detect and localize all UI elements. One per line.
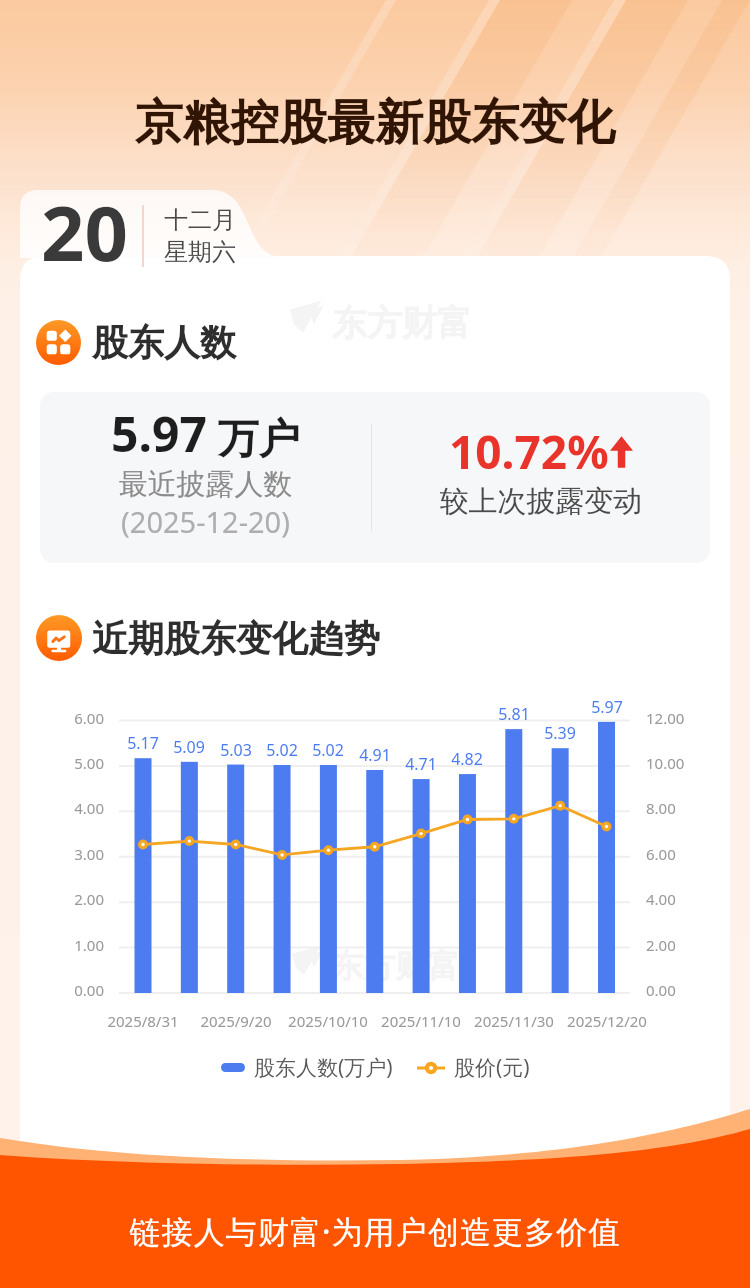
staticText: 3.00 [45,844,104,864]
staticText: 5.03 [208,739,264,761]
staticText: 5.97 [111,401,207,466]
staticText: 2025/9/20 [181,1011,291,1031]
staticText: 2.00 [646,935,716,955]
staticText: 0.00 [45,980,104,1000]
staticText: 星期六 [164,237,236,267]
staticText: 20 [41,180,128,284]
staticText: 2025/12/20 [552,1011,662,1031]
staticText: 万户 [207,409,300,465]
staticText: 5.02 [300,739,356,761]
staticText: 10.72% [449,420,609,483]
staticText: 近期股东变化趋势 [92,616,380,661]
staticText: 5.09 [161,736,217,758]
staticText: 4.00 [646,889,716,909]
staticText: 6.00 [646,844,716,864]
staticText: 5.81 [486,703,542,725]
staticText: 10.00 [646,753,716,773]
staticText: 2025/8/31 [88,1011,198,1031]
staticText: 8.00 [646,798,716,818]
button[interactable]: 股价(元) [417,1053,530,1082]
staticText: 2025/10/10 [273,1011,383,1031]
staticText: 1.00 [45,935,104,955]
other: Trend chart [36,615,82,661]
staticText: 12.00 [646,708,716,728]
staticText: 2025/11/10 [366,1011,476,1031]
staticText: 2025/11/30 [459,1011,569,1031]
staticText: 6.00 [45,708,104,728]
staticText: 5.97 [579,696,635,718]
staticText: (2025-12-20) [40,502,371,541]
staticText: 4.82 [439,748,495,770]
staticText: 京粮控股最新股东变化 [0,93,750,153]
staticText: 东方财富 [331,946,460,987]
staticText: 最近披露人数 [40,466,371,503]
other: Shareholder count [36,320,81,365]
staticText: 较上次披露变动 [372,483,710,520]
staticText: 4.91 [347,744,403,766]
staticText: 东方财富 [332,301,472,345]
staticText: 0.00 [646,980,716,1000]
button[interactable]: 股东人数(万户) [221,1053,393,1082]
staticText: 股东人数(万户) [254,1053,393,1082]
button[interactable]: Trend chart [36,615,380,661]
staticText: 5.17 [115,732,171,754]
staticText: 5.00 [45,753,104,773]
staticText: 4.71 [393,753,449,775]
staticText: 十二月 [164,205,236,235]
staticText: 5.02 [254,739,310,761]
button[interactable]: Shareholder count [36,320,236,365]
staticText: 4.00 [45,798,104,818]
staticText: 股价(元) [454,1053,530,1082]
staticText: 2.00 [45,889,104,909]
staticText: 链接人与财富·为用户创造更多价值 [0,1210,750,1252]
staticText: 股东人数 [92,320,236,365]
staticText: 5.39 [532,722,588,744]
